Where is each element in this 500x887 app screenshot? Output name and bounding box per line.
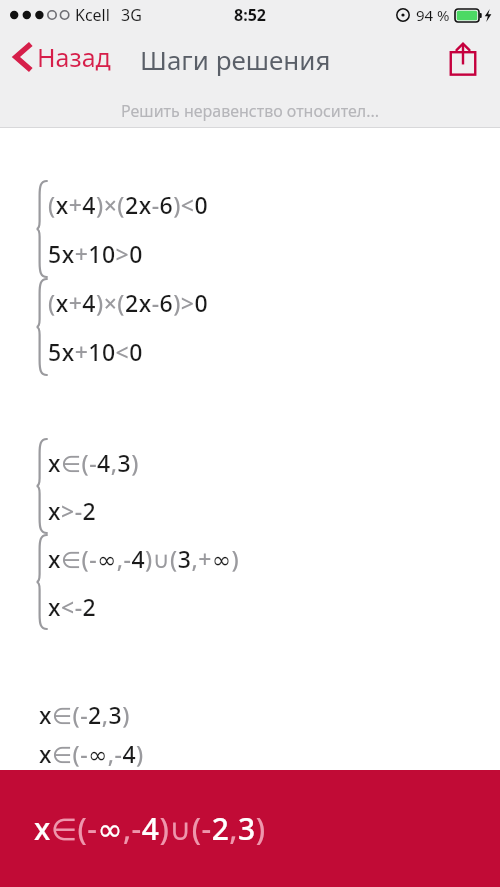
staticText: Решить неравенство относител...: [121, 100, 380, 122]
staticText: 8:52: [234, 4, 266, 26]
staticText: 5x+10>0: [48, 238, 143, 269]
staticText: x>-2: [48, 495, 97, 526]
staticText: Шаги решения: [140, 42, 331, 77]
staticText: x<-2: [48, 591, 97, 622]
button[interactable]: x∈(-∞,-4)∪(-2,3): [0, 770, 500, 887]
staticText: 3G: [121, 4, 142, 26]
button[interactable]: Share: [440, 36, 486, 82]
staticText: (x+4)×(2x-6)<0: [48, 189, 209, 220]
staticText: (x+4)×(2x-6)>0: [48, 287, 209, 318]
button[interactable]: Назад: [10, 36, 115, 78]
staticText: 5x+10<0: [48, 336, 143, 367]
staticText: x∈(-∞,-4)∪(-2,3): [34, 808, 266, 849]
staticText: x∈(-2,3): [39, 699, 130, 730]
staticText: x∈(-4,3): [48, 447, 139, 478]
staticText: 94 %: [416, 5, 450, 25]
staticText: Kcell: [75, 4, 110, 26]
staticText: Назад: [37, 40, 111, 74]
staticText: x∈(-∞,-4)∪(3,+∞): [48, 543, 240, 574]
staticText: x∈(-∞,-4): [39, 738, 144, 769]
